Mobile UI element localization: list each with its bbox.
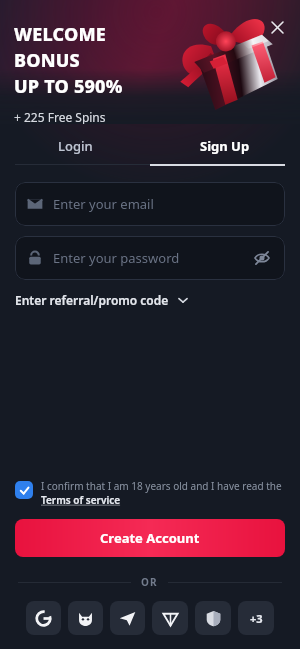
staticText: OR: [141, 575, 158, 589]
button[interactable]: Sign Up: [150, 128, 300, 164]
staticText: BONUS: [14, 48, 80, 73]
button[interactable]: Create Account: [15, 519, 285, 557]
button[interactable]: fox: [68, 601, 103, 635]
staticText: Sign Up: [200, 137, 250, 155]
staticText: I confirm that I am 18 years old and I h…: [41, 479, 282, 493]
button[interactable]: Show password: [251, 247, 273, 269]
staticText: Enter referral/promo code: [15, 292, 169, 308]
staticText: Terms of service: [41, 493, 121, 507]
staticText: +3: [250, 611, 263, 626]
button[interactable]: plus3: [238, 601, 274, 635]
staticText: Enter your password: [53, 249, 180, 267]
staticText: + 225 Free Spins: [14, 109, 106, 124]
button[interactable]: Enter referral/promo code: [15, 292, 189, 308]
staticText: UP TO 590%: [14, 74, 123, 99]
staticText: Create Account: [100, 529, 200, 547]
staticText: Login: [58, 137, 93, 155]
staticText: Enter your email: [53, 195, 154, 213]
staticText: WELCOME: [14, 22, 106, 47]
button[interactable]: Login: [0, 128, 150, 164]
button[interactable]: google: [26, 601, 61, 635]
button[interactable]: ton: [152, 601, 188, 635]
button[interactable]: Enter your email: [15, 182, 285, 226]
button[interactable]: Enter your password: [15, 236, 285, 280]
button[interactable]: I confirm that I am 18 years old and I h…: [15, 479, 285, 507]
button[interactable]: shield: [195, 601, 231, 635]
button[interactable]: Close: [264, 14, 290, 40]
button[interactable]: telegram: [110, 601, 145, 635]
